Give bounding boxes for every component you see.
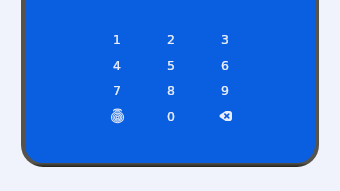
staticText: 9 bbox=[221, 83, 229, 98]
staticText: 8 bbox=[167, 83, 175, 98]
button[interactable]: Backspace bbox=[203, 104, 247, 128]
staticText: 7 bbox=[113, 83, 121, 98]
staticText: 1 bbox=[113, 32, 121, 47]
button[interactable]: Fingerprint bbox=[95, 104, 139, 128]
staticText: 0 bbox=[167, 109, 175, 124]
button[interactable]: 9 bbox=[203, 78, 247, 102]
button[interactable]: 0 bbox=[149, 104, 193, 128]
button[interactable]: 5 bbox=[149, 53, 193, 77]
staticText: 6 bbox=[221, 58, 229, 73]
button[interactable]: 4 bbox=[95, 53, 139, 77]
button[interactable]: 7 bbox=[95, 78, 139, 102]
staticText: 4 bbox=[113, 58, 121, 73]
staticText: 5 bbox=[167, 58, 175, 73]
staticText: 2 bbox=[167, 32, 175, 47]
button[interactable]: 8 bbox=[149, 78, 193, 102]
staticText: 3 bbox=[221, 32, 229, 47]
button[interactable]: 6 bbox=[203, 53, 247, 77]
button[interactable]: 2 bbox=[149, 27, 193, 51]
button[interactable]: 3 bbox=[203, 27, 247, 51]
button[interactable]: 1 bbox=[95, 27, 139, 51]
